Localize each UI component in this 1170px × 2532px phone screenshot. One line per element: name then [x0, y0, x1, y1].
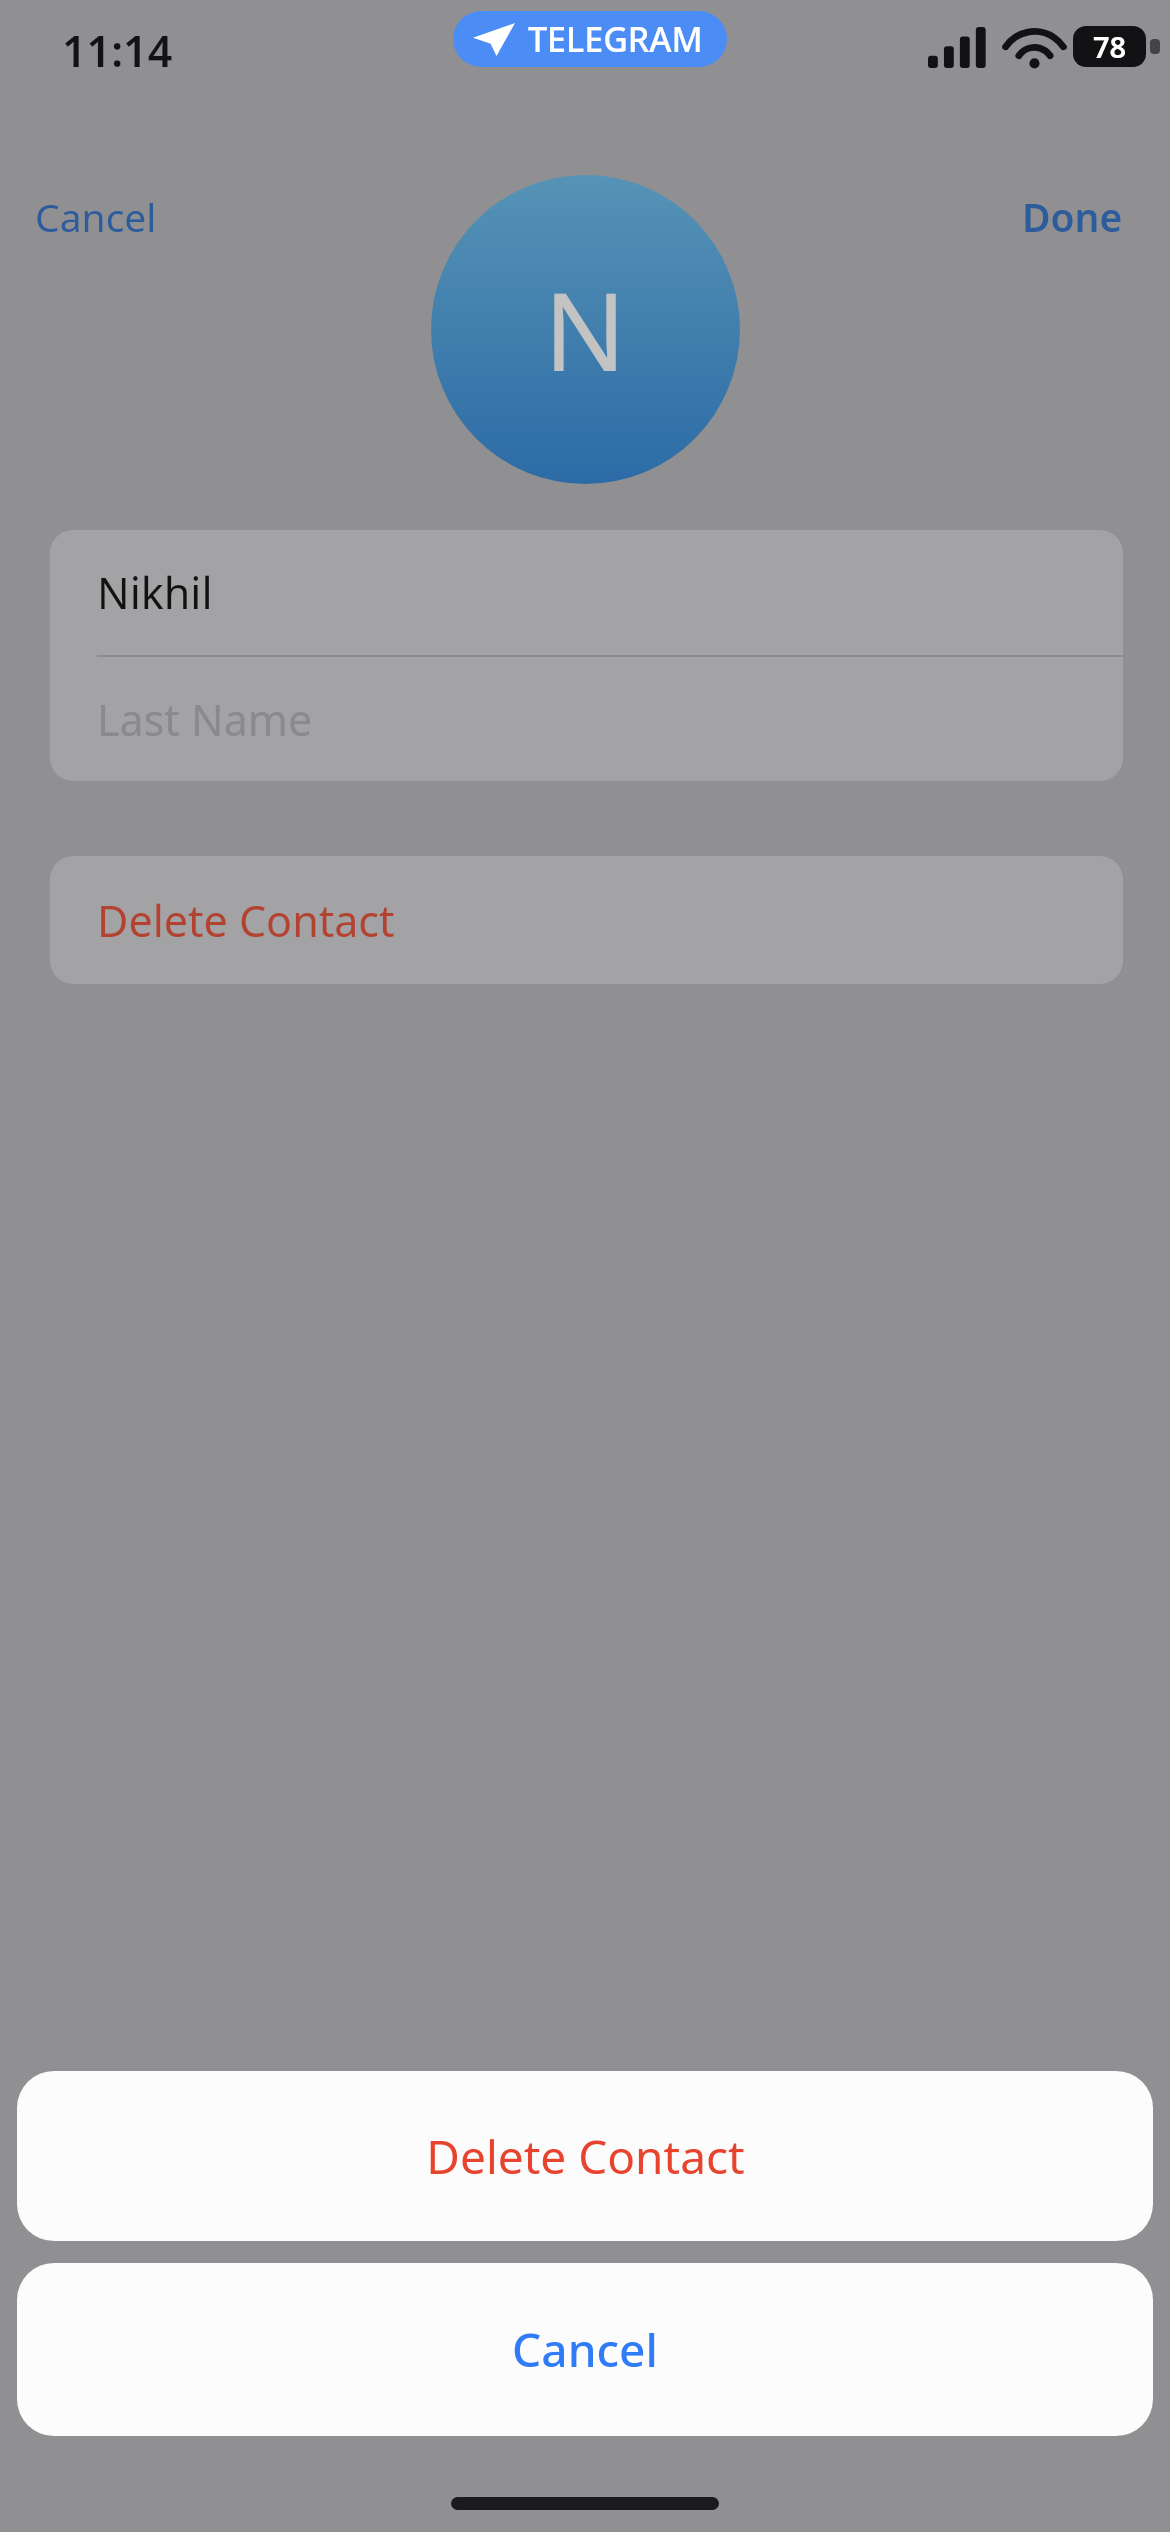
staticText: Last Name: [97, 690, 313, 749]
staticText: Cancel: [35, 190, 157, 243]
button[interactable]: Delete Contact: [17, 2071, 1153, 2241]
button[interactable]: Contact photo: [431, 175, 740, 484]
staticText: 78: [1093, 27, 1127, 66]
staticText: Delete Contact: [97, 891, 395, 950]
button[interactable]: Delete Contact: [50, 856, 1123, 984]
staticText: Delete Contact: [426, 2125, 745, 2188]
button[interactable]: Cancel: [16, 180, 176, 253]
button[interactable]: Done: [1003, 180, 1142, 253]
staticText: 11:14: [62, 21, 173, 80]
staticText: N: [544, 256, 627, 403]
button[interactable]: Cancel: [17, 2263, 1153, 2436]
staticText: Done: [1022, 190, 1123, 243]
button[interactable]: Telegram: [453, 11, 727, 67]
staticText: TELEGRAM: [528, 16, 703, 62]
staticText: Nikhil: [97, 563, 213, 622]
staticText: Cancel: [512, 2318, 658, 2381]
button[interactable]: Nikhil: [50, 530, 1123, 655]
